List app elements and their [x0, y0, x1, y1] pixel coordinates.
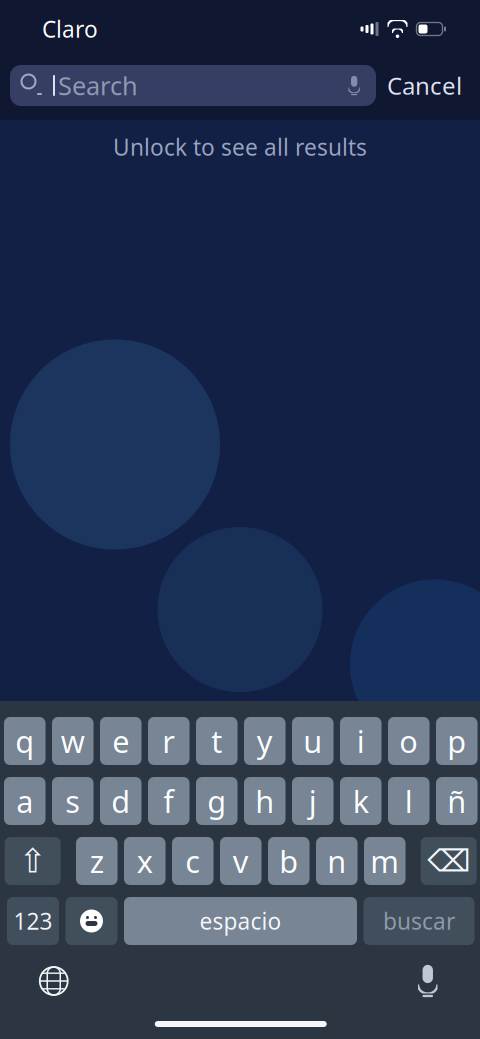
staticText: ⇧ [19, 842, 47, 880]
button[interactable]: k [340, 777, 381, 825]
button[interactable]: e [100, 717, 141, 765]
staticText: b [279, 841, 298, 881]
staticText: buscar [383, 906, 455, 936]
button[interactable]: l [388, 777, 429, 825]
staticText: h [255, 781, 274, 821]
staticText: z [90, 841, 104, 881]
button[interactable]: f [148, 777, 189, 825]
button[interactable]: Shift [5, 837, 61, 885]
staticText: g [207, 781, 226, 821]
button[interactable]: t [196, 717, 237, 765]
staticText: n [327, 841, 346, 881]
button[interactable]: j [292, 777, 333, 825]
button[interactable]: z [76, 837, 117, 885]
button[interactable]: u [292, 717, 333, 765]
button[interactable]: m [364, 837, 405, 885]
button[interactable]: h [244, 777, 285, 825]
staticText: a [16, 781, 33, 821]
staticText: y [257, 721, 273, 761]
staticText: e [112, 721, 129, 761]
staticText: c [185, 841, 200, 881]
button[interactable]: s [52, 777, 93, 825]
button[interactable]: 123 [7, 897, 59, 945]
button[interactable]: d [100, 777, 141, 825]
button[interactable]: Cancel [376, 65, 473, 106]
staticText: Search [58, 69, 138, 102]
button[interactable]: g [196, 777, 237, 825]
staticText: ñ [447, 781, 466, 821]
staticText: k [353, 781, 369, 821]
staticText: w [61, 721, 85, 761]
button[interactable]: Change keyboard [29, 959, 79, 1003]
staticText: r [162, 721, 175, 761]
button[interactable]: Dictate [403, 959, 453, 1003]
staticText: q [15, 721, 34, 761]
staticText: j [309, 781, 317, 821]
button[interactable]: c [172, 837, 213, 885]
button[interactable]: i [340, 717, 381, 765]
button[interactable]: v [220, 837, 261, 885]
button[interactable]: w [52, 717, 93, 765]
button[interactable]: y [244, 717, 285, 765]
staticText: espacio [199, 906, 281, 936]
button[interactable]: Emoji [65, 897, 117, 945]
staticText: t [211, 721, 222, 761]
staticText: ⌫ [427, 844, 470, 878]
staticText: Cancel [387, 70, 462, 101]
staticText: p [447, 721, 466, 761]
staticText: o [399, 721, 418, 761]
staticText: 123 [13, 906, 52, 936]
staticText: Claro [42, 14, 98, 44]
button[interactable]: Delete [421, 837, 477, 885]
staticText: l [405, 781, 413, 821]
button[interactable]: q [4, 717, 45, 765]
staticText: s [65, 781, 80, 821]
button[interactable]: n [316, 837, 357, 885]
staticText: v [233, 841, 249, 881]
staticText: m [370, 841, 399, 881]
staticText: i [357, 721, 365, 761]
button[interactable]: Search [10, 65, 376, 106]
staticText: Unlock to see all results [113, 132, 367, 162]
button[interactable]: a [4, 777, 45, 825]
button[interactable]: x [124, 837, 165, 885]
button[interactable]: o [388, 717, 429, 765]
button[interactable]: r [148, 717, 189, 765]
staticText: f [163, 781, 174, 821]
button[interactable]: p [436, 717, 477, 765]
staticText: x [137, 841, 153, 881]
button[interactable]: b [268, 837, 309, 885]
staticText: u [303, 721, 322, 761]
staticText: d [111, 781, 130, 821]
button[interactable]: ñ [436, 777, 477, 825]
button[interactable]: espacio [124, 897, 357, 945]
button[interactable]: buscar [363, 897, 474, 945]
